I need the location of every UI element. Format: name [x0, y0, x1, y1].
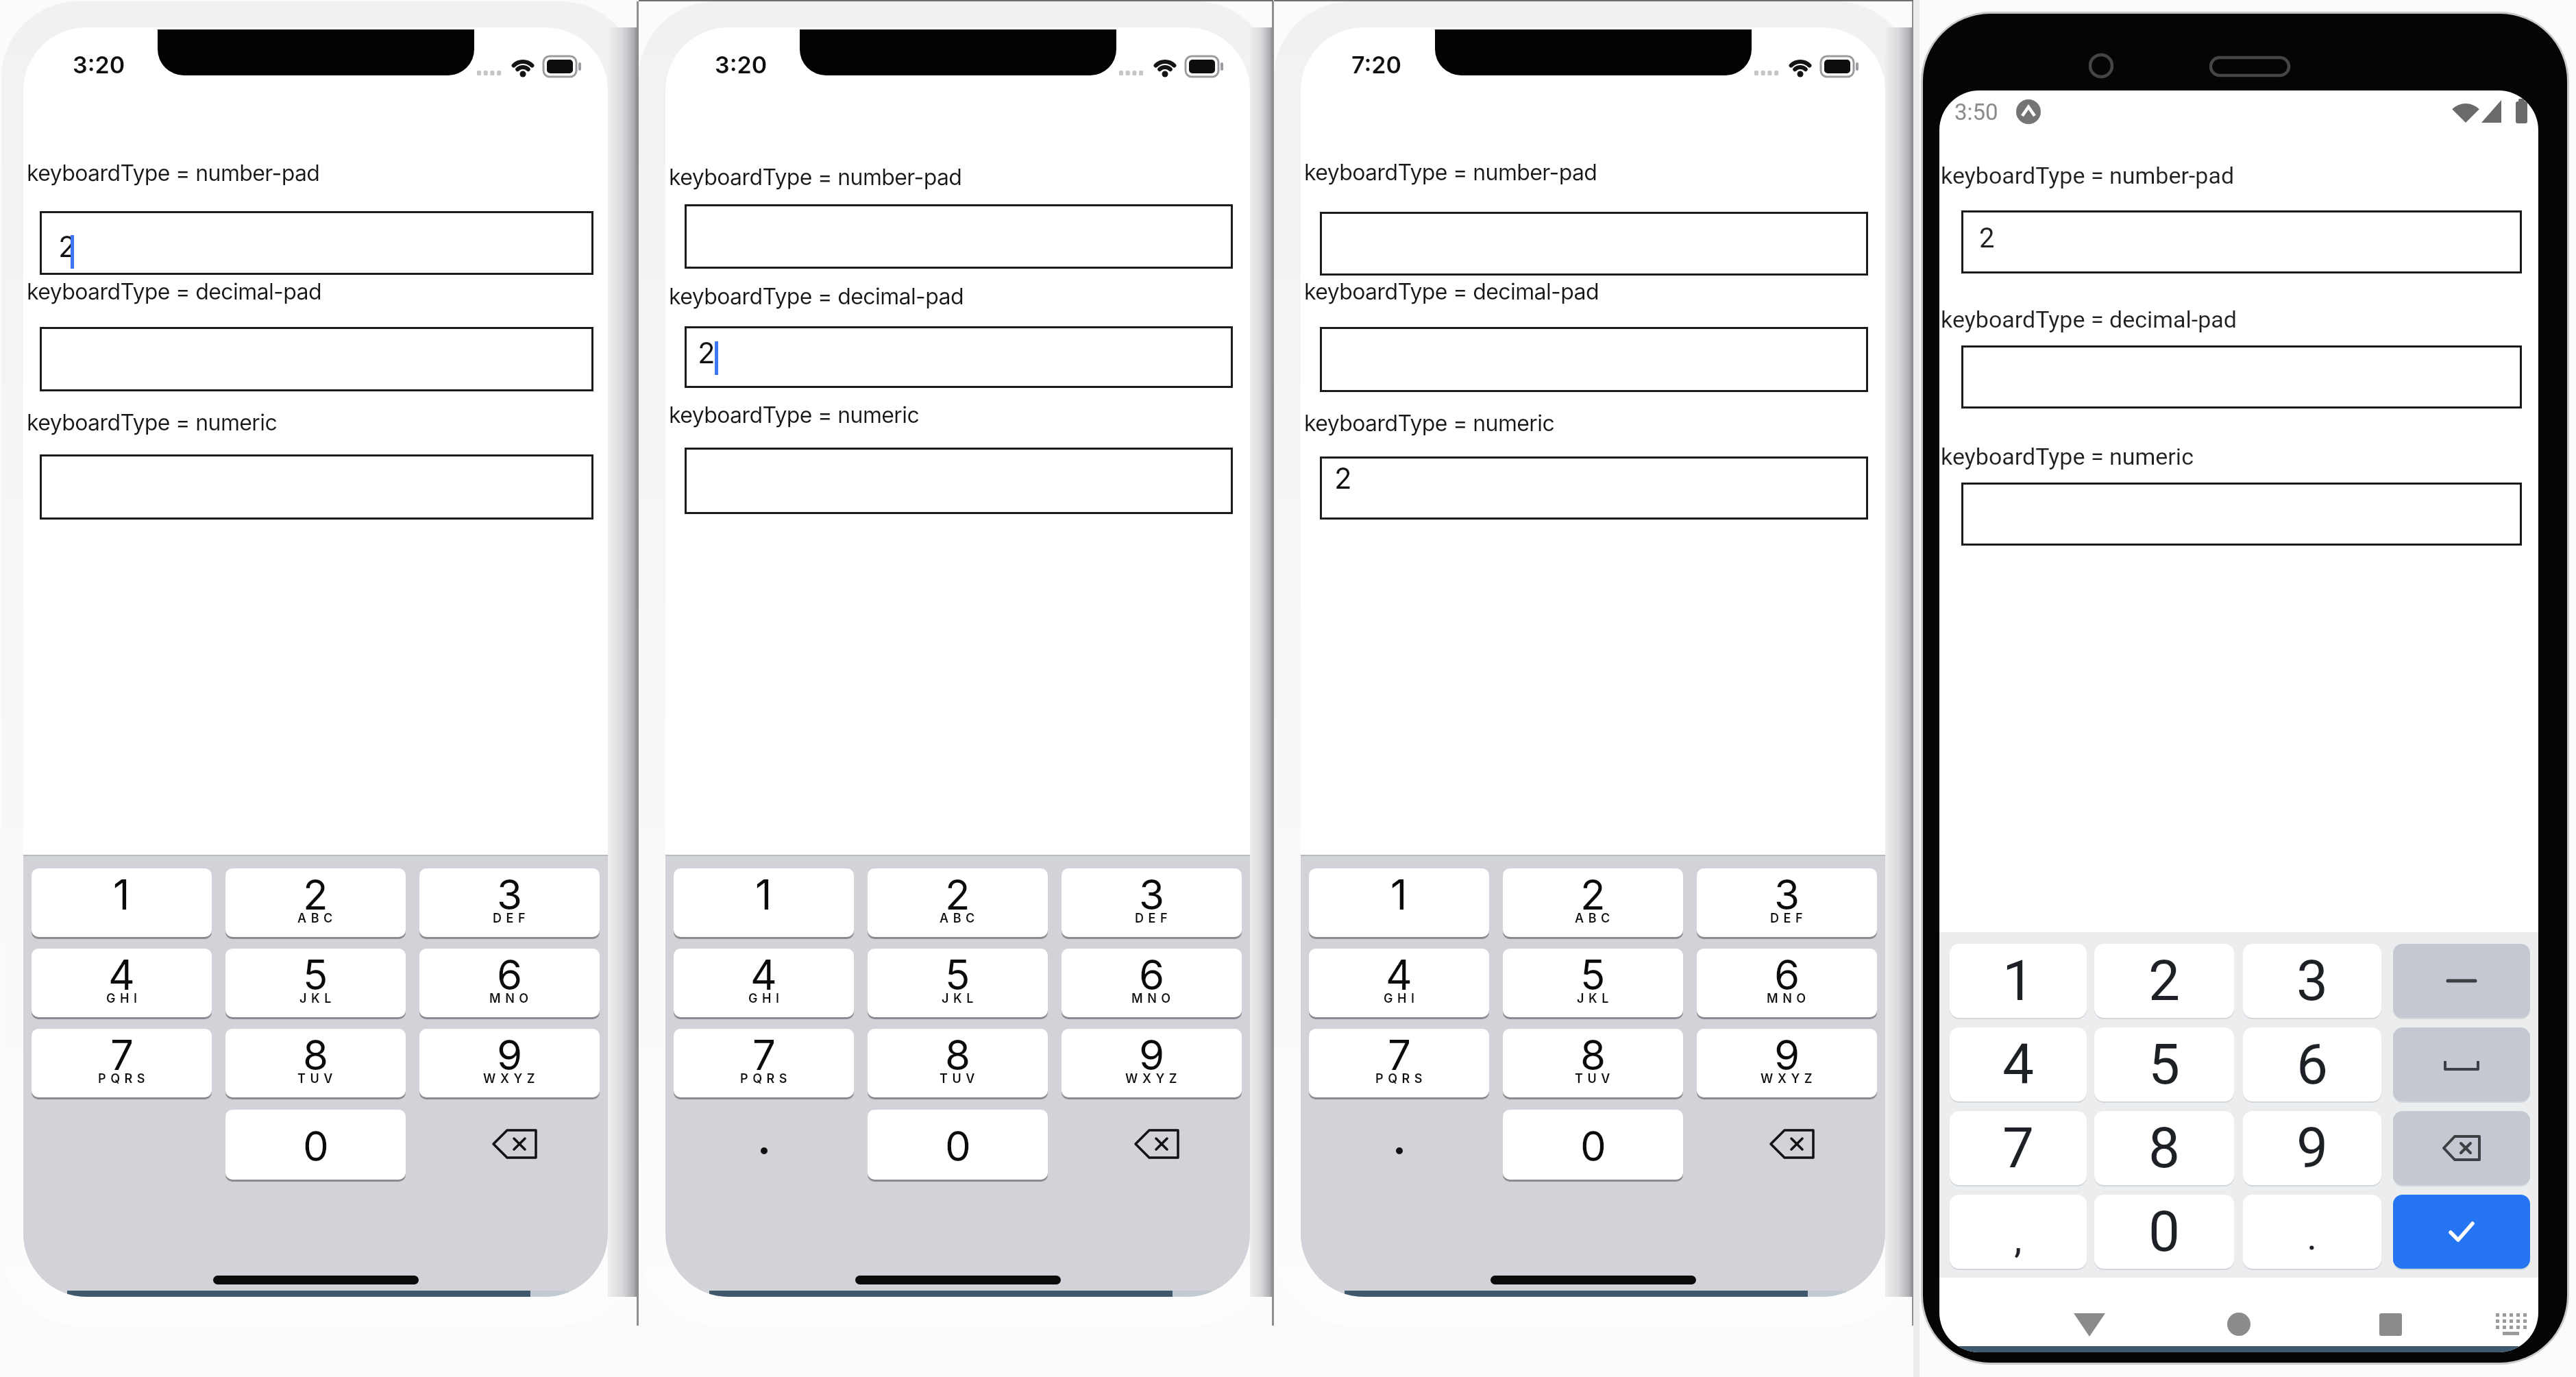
button[interactable]: 6 [1697, 949, 1877, 1017]
button[interactable] [419, 1110, 600, 1180]
button[interactable] [1961, 483, 2522, 546]
button[interactable] [40, 454, 593, 520]
button[interactable]: 3 [1697, 868, 1877, 937]
button[interactable]: 8 [1503, 1029, 1683, 1097]
button[interactable]: 2 [2094, 944, 2234, 1018]
staticText: P Q R S [98, 1071, 146, 1086]
staticText: 5 [303, 950, 328, 1000]
button[interactable] [2393, 1027, 2530, 1101]
button[interactable]: 0 [2094, 1195, 2234, 1269]
staticText: keyboardType = number-pad [669, 164, 962, 191]
button[interactable] [685, 204, 1233, 269]
button[interactable] [1320, 212, 1868, 276]
staticText: 4 [1386, 950, 1412, 1000]
button[interactable]: 0 [1503, 1110, 1683, 1180]
staticText: 6 [1139, 950, 1165, 1000]
staticText: 2 [698, 335, 715, 370]
button[interactable] [2393, 1195, 2530, 1269]
button[interactable]: 6 [2243, 1027, 2381, 1101]
staticText: 3:20 [715, 51, 768, 79]
button[interactable]: 0 [868, 1110, 1048, 1180]
button[interactable]: 1 [1950, 944, 2087, 1018]
button[interactable]: 7 [1950, 1111, 2087, 1185]
button[interactable] [2211, 1300, 2266, 1352]
staticText: 2 [1334, 461, 1352, 496]
button[interactable]: 2 [1320, 456, 1868, 520]
staticText: 1 [755, 870, 772, 920]
button[interactable]: 7 [674, 1029, 854, 1097]
staticText: G H I [106, 991, 138, 1006]
button[interactable]: 4 [32, 949, 212, 1017]
button[interactable]: 8 [2094, 1111, 2234, 1185]
staticText: 1 [2002, 948, 2035, 1014]
button[interactable]: 5 [2094, 1027, 2234, 1101]
staticText: 7:20 [1351, 51, 1401, 79]
button[interactable]: 6 [419, 949, 600, 1017]
button[interactable] [1320, 327, 1868, 392]
staticText: keyboardType = decimal-pad [1304, 278, 1599, 305]
staticText: 8 [2148, 1115, 2181, 1181]
button[interactable]: 9 [1697, 1029, 1877, 1097]
button[interactable]: 0 [225, 1110, 406, 1180]
button[interactable]: 1 [1309, 868, 1489, 937]
staticText: 3:20 [73, 51, 125, 79]
button[interactable]: , [1950, 1195, 2087, 1269]
button[interactable]: 2 [225, 868, 406, 937]
button[interactable] [1697, 1110, 1877, 1180]
button[interactable]: 3 [419, 868, 600, 937]
staticText: 0 [1580, 1121, 1606, 1171]
button[interactable] [674, 1110, 854, 1180]
button[interactable]: 9 [419, 1029, 600, 1097]
button[interactable] [2062, 1300, 2117, 1352]
button[interactable]: 9 [1062, 1029, 1242, 1097]
button[interactable]: 4 [1950, 1027, 2087, 1101]
staticText: W X Y Z [1761, 1071, 1813, 1086]
button[interactable]: 3 [2243, 944, 2381, 1018]
staticText: 3 [1139, 870, 1165, 920]
button[interactable]: 5 [868, 949, 1048, 1017]
button[interactable]: 5 [1503, 949, 1683, 1017]
staticText: 6 [2296, 1032, 2329, 1097]
button[interactable]: 8 [868, 1029, 1048, 1097]
button[interactable]: 5 [225, 949, 406, 1017]
button[interactable]: 9 [2243, 1111, 2381, 1185]
staticText: J K L [299, 991, 332, 1006]
button[interactable]: 2 [1503, 868, 1683, 937]
button[interactable] [1062, 1110, 1242, 1180]
button[interactable]: 1 [674, 868, 854, 937]
button[interactable] [2486, 1300, 2538, 1352]
button[interactable]: 4 [674, 949, 854, 1017]
button[interactable] [1961, 345, 2522, 409]
staticText: D E F [1135, 911, 1168, 926]
button[interactable]: 2 [1961, 210, 2522, 273]
button[interactable]: 7 [1309, 1029, 1489, 1097]
button[interactable]: 1 [32, 868, 212, 937]
button[interactable] [40, 327, 593, 391]
staticText: keyboardType = numeric [669, 402, 920, 428]
button[interactable]: 6 [1062, 949, 1242, 1017]
button[interactable] [2393, 1111, 2530, 1185]
staticText: P Q R S [1375, 1071, 1423, 1086]
button[interactable]: 2 [868, 868, 1048, 937]
button[interactable] [1309, 1110, 1489, 1180]
staticText: T U V [297, 1071, 334, 1086]
staticText: J K L [942, 991, 974, 1006]
button[interactable]: 2 [685, 326, 1233, 388]
button[interactable]: 3 [1062, 868, 1242, 937]
staticText: M N O [1131, 991, 1172, 1006]
button[interactable] [2352, 1300, 2407, 1352]
staticText: 2 [2148, 948, 2181, 1014]
staticText: 6 [497, 950, 523, 1000]
button[interactable] [685, 448, 1233, 514]
button[interactable]: 4 [1309, 949, 1489, 1017]
button[interactable]: 7 [32, 1029, 212, 1097]
staticText: 1 [113, 870, 130, 920]
button[interactable]: . [2243, 1195, 2381, 1269]
staticText: 7 [752, 1030, 776, 1080]
button[interactable]: 2 [40, 211, 593, 275]
staticText: 1 [1390, 870, 1408, 920]
staticText: 3 [2296, 948, 2329, 1014]
staticText: 8 [945, 1030, 971, 1080]
button[interactable] [2393, 944, 2530, 1018]
button[interactable]: 8 [225, 1029, 406, 1097]
